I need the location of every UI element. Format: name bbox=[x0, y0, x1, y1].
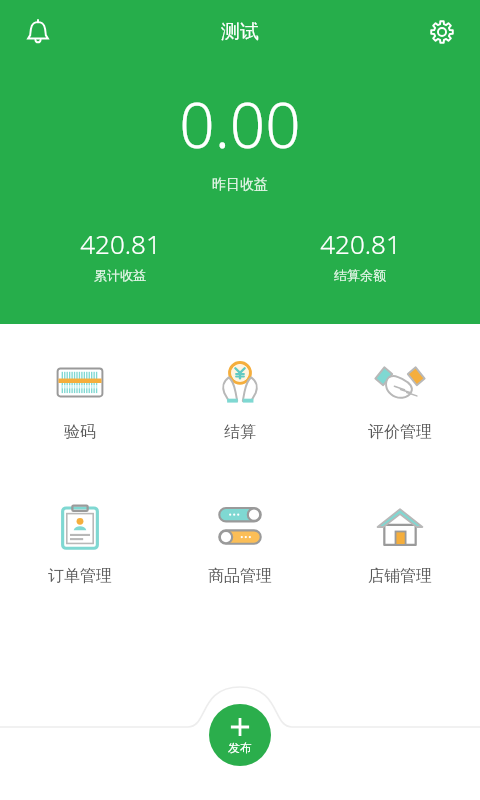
staticText: 累计收益 bbox=[94, 267, 146, 283]
staticText: 420.81 bbox=[320, 226, 401, 261]
button[interactable]: 发布 bbox=[209, 704, 271, 766]
button[interactable]: Settings bbox=[418, 8, 466, 56]
button[interactable]: 订单管理 bbox=[0, 494, 160, 590]
button[interactable]: Notifications bbox=[14, 8, 62, 56]
button[interactable]: 商品管理 bbox=[160, 494, 320, 590]
staticText: 结算 bbox=[224, 422, 256, 442]
staticText: 0.00 bbox=[179, 82, 301, 166]
staticText: 订单管理 bbox=[48, 566, 112, 586]
staticText: 验码 bbox=[64, 422, 96, 442]
staticText: 发布 bbox=[228, 740, 252, 755]
button[interactable]: 店铺管理 bbox=[320, 494, 480, 590]
button[interactable]: 验码 bbox=[0, 350, 160, 446]
staticText: 结算余额 bbox=[334, 267, 386, 283]
button[interactable]: 评价管理 bbox=[320, 350, 480, 446]
button[interactable]: 结算 bbox=[160, 350, 320, 446]
staticText: 评价管理 bbox=[368, 422, 432, 442]
button[interactable]: 420.81 bbox=[0, 226, 240, 283]
button[interactable]: 420.81 bbox=[240, 226, 480, 283]
staticText: 商品管理 bbox=[208, 566, 272, 586]
staticText: 420.81 bbox=[80, 226, 161, 261]
staticText: 昨日收益 bbox=[212, 176, 268, 194]
staticText: 测试 bbox=[221, 20, 259, 44]
staticText: 店铺管理 bbox=[368, 566, 432, 586]
